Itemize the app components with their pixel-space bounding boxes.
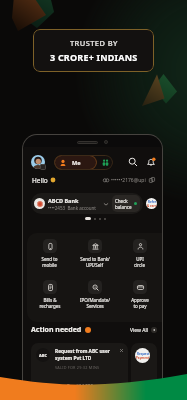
staticText: ABC xyxy=(39,353,47,358)
button[interactable]: UPI xyxy=(117,239,162,280)
button[interactable]: Search xyxy=(128,157,138,167)
staticText: Check xyxy=(115,198,128,204)
staticText: ••••••2176@upi xyxy=(111,177,146,184)
button[interactable]: Family xyxy=(102,159,109,166)
staticText: UPI xyxy=(136,256,144,262)
staticText: Refer xyxy=(148,200,157,204)
button[interactable]: Request xyxy=(131,343,157,391)
staticText: Action needed xyxy=(31,325,82,335)
staticText: Request from ABC user xyxy=(55,348,110,355)
button[interactable]: Dismiss xyxy=(119,348,124,353)
button[interactable]: IPO/Mandate/ xyxy=(72,280,117,322)
staticText: Approve xyxy=(131,297,149,303)
staticText: Me xyxy=(72,159,81,166)
staticText: VALID FOR 29:32 MINS xyxy=(55,365,100,370)
button[interactable]: Profile xyxy=(31,155,46,170)
button[interactable]: Notifications xyxy=(146,157,156,167)
staticText: & earn xyxy=(147,204,157,208)
staticText: View All xyxy=(130,327,149,334)
staticText: TRUSTED BY xyxy=(70,38,118,48)
staticText: UPI/Self xyxy=(86,262,103,268)
staticText: Bills & xyxy=(43,297,57,303)
staticText: balance xyxy=(115,204,132,210)
staticText: Send to xyxy=(41,256,58,262)
button[interactable]: ABC xyxy=(31,343,128,391)
button[interactable]: Bills & xyxy=(27,280,72,322)
button[interactable]: Check xyxy=(112,195,140,212)
staticText: IPO/Mandate/ xyxy=(80,297,110,303)
staticText: ••••2453 Bank account xyxy=(48,205,96,211)
staticText: to pay xyxy=(133,303,147,309)
button[interactable]: ABCD Bank xyxy=(31,193,143,214)
staticText: mobile xyxy=(42,262,57,268)
button[interactable]: Send to Bank/ xyxy=(72,239,117,280)
button[interactable]: Me xyxy=(54,155,97,170)
staticText: circle xyxy=(134,262,145,268)
staticText: system Pvt LTD xyxy=(55,355,92,362)
staticText: ABCD Bank xyxy=(48,197,79,204)
staticText: Payment xyxy=(136,356,150,360)
staticText: Services xyxy=(86,303,104,309)
staticText: Send to Bank/ xyxy=(80,256,110,262)
staticText: recharges xyxy=(39,303,61,309)
button[interactable]: Approve xyxy=(117,280,162,322)
button[interactable]: Refer and earn xyxy=(146,198,157,209)
staticText: 3 CRORE+ INDIANS xyxy=(50,51,138,63)
staticText: Hello xyxy=(32,176,48,185)
button[interactable]: View all xyxy=(151,327,157,333)
staticText: Pay ₹14,220 xyxy=(67,383,93,389)
button[interactable]: Send to xyxy=(27,239,72,280)
staticText: Request xyxy=(137,352,150,356)
